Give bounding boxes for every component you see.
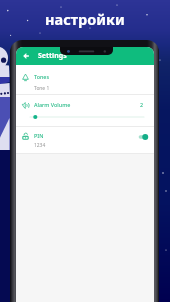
- staticText: 1234: [34, 142, 46, 149]
- button[interactable]: PIN: [16, 127, 154, 153]
- button[interactable]: PIN enabled toggle: [138, 134, 148, 140]
- staticText: Settings: [38, 51, 67, 61]
- staticText: 2: [140, 101, 144, 108]
- staticText: Tones: [34, 73, 50, 80]
- button[interactable]: Alarm Volume: [16, 95, 154, 112]
- staticText: Tone 1: [34, 85, 50, 92]
- button[interactable]: Tones: [16, 65, 154, 94]
- staticText: настройки: [45, 9, 125, 29]
- staticText: Alarm Volume: [34, 101, 71, 108]
- button[interactable]: Back: [19, 49, 33, 63]
- staticText: PIN: [34, 132, 44, 139]
